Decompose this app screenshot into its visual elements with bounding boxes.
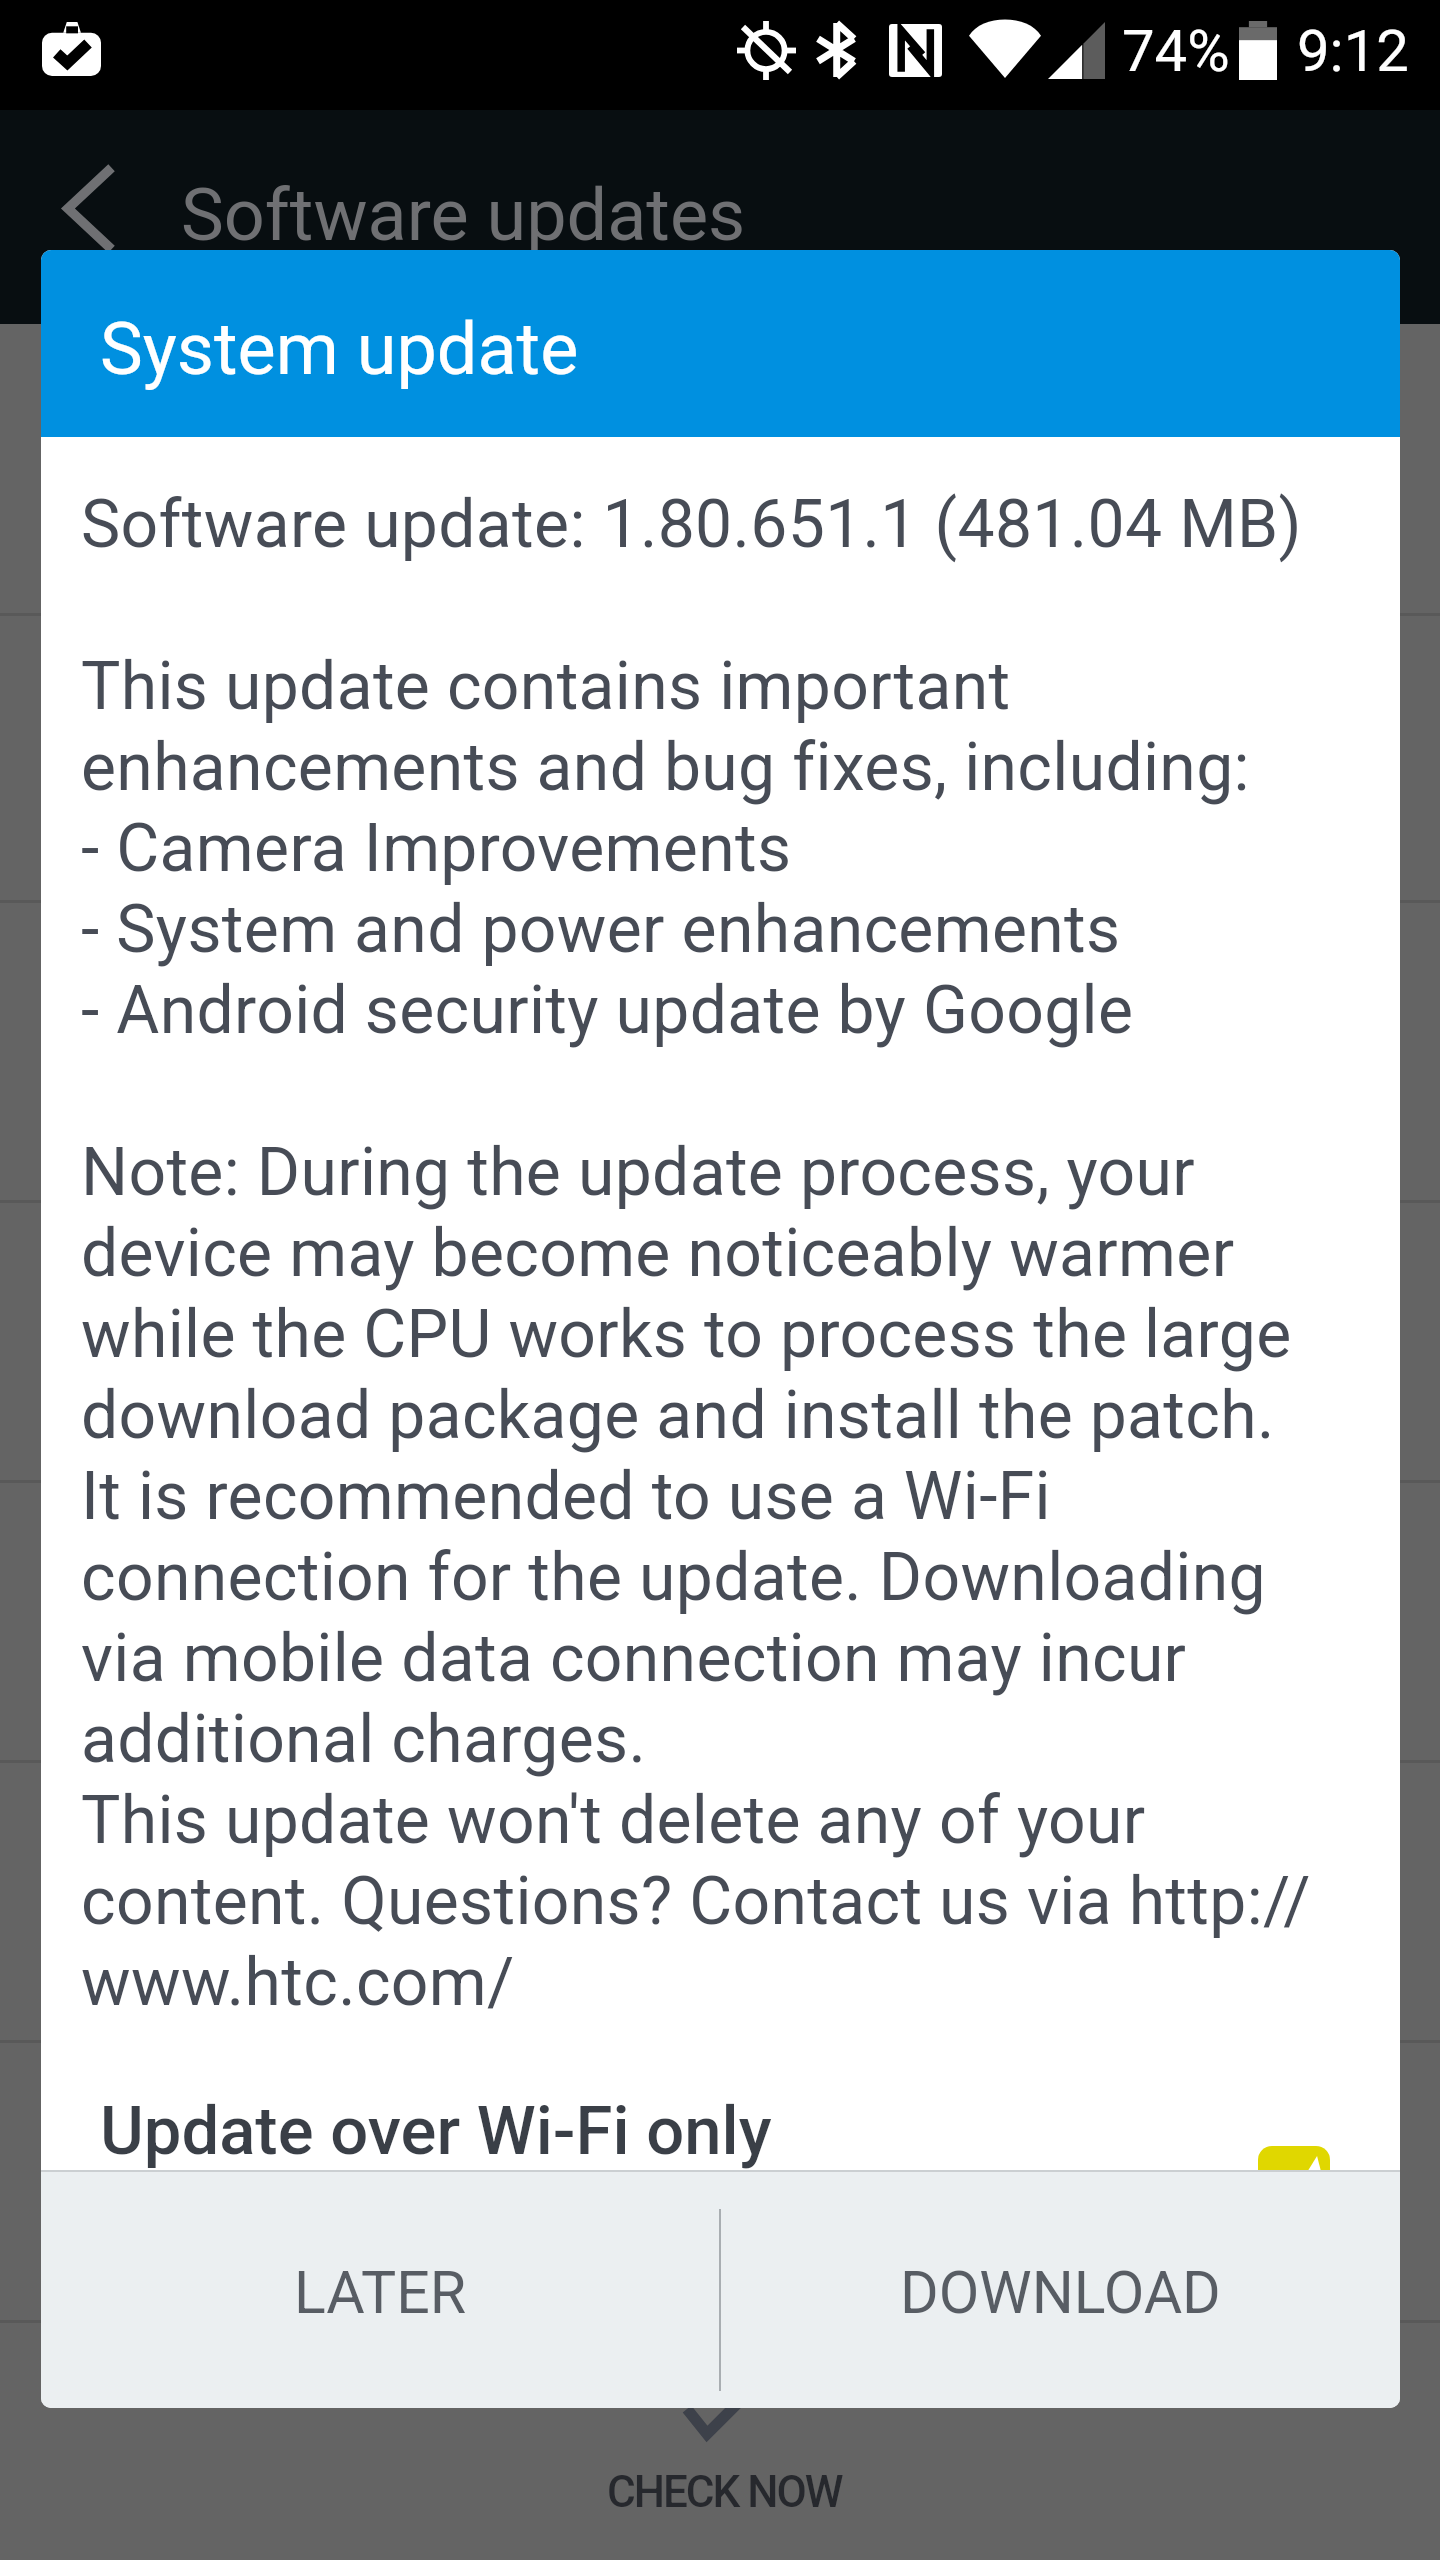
staticText: Note: During the update process, your de… [81, 1131, 1312, 2022]
staticText: 9:12 [1297, 17, 1409, 85]
staticText: Software update: 1.80.651.1 (481.04 MB) [81, 483, 1302, 564]
staticText: DOWNLOAD [900, 2258, 1221, 2327]
staticText: This update contains important enhanceme… [81, 645, 1312, 1050]
staticText: LATER [294, 2258, 467, 2327]
staticText: 74% [1122, 17, 1230, 85]
button[interactable]: LATER [41, 2172, 720, 2408]
staticText: Update over Wi-Fi only [100, 2092, 772, 2171]
staticText: CHECK NOW [607, 2466, 842, 2518]
button[interactable]: DOWNLOAD [720, 2172, 1400, 2408]
staticText: Software updates [181, 173, 746, 257]
staticText: System update [100, 307, 579, 391]
button[interactable]: CHECK NOW [0, 2360, 1440, 2560]
button[interactable]: Update over Wi-Fi only [41, 1995, 1400, 2170]
button[interactable]: Back [63, 171, 112, 246]
